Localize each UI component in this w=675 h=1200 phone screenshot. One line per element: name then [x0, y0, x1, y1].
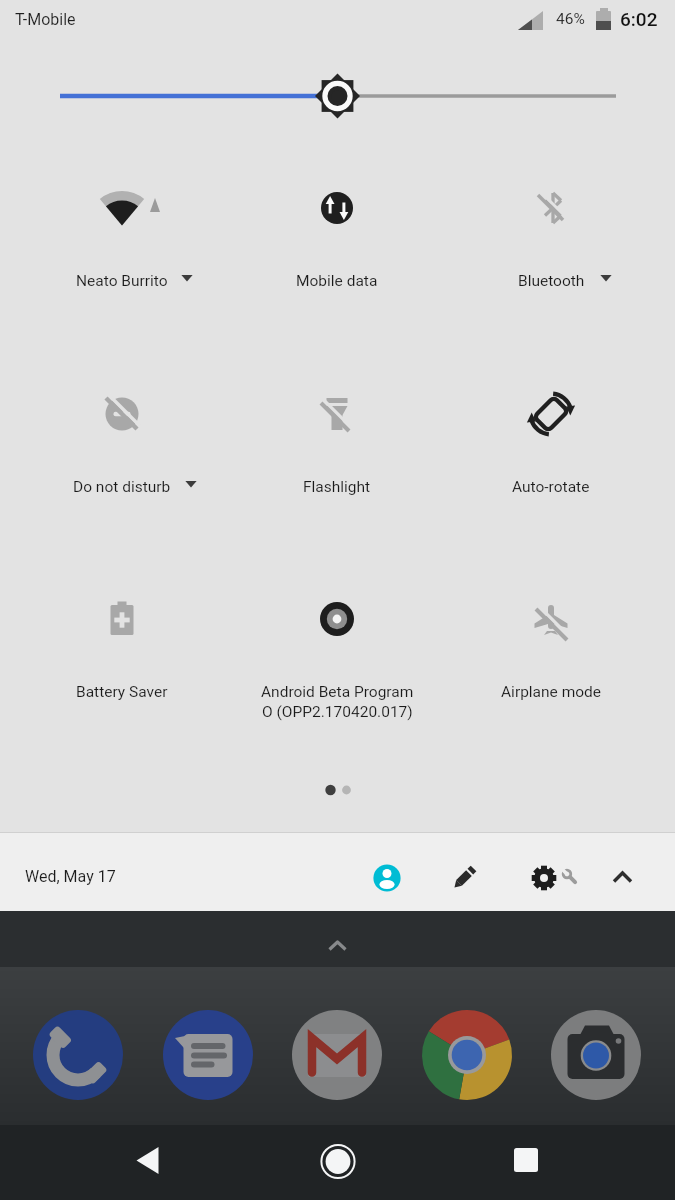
staticText: Flashlight [303, 478, 371, 496]
button[interactable]: Flashlight [230, 369, 444, 511]
staticText: Battery Saver [76, 683, 168, 701]
staticText: T-Mobile [15, 10, 76, 29]
button[interactable] [0, 72, 675, 120]
button[interactable]: Auto-rotate [444, 369, 658, 511]
button[interactable]: Airplane mode [444, 574, 658, 716]
button[interactable] [422, 1010, 512, 1100]
button[interactable] [33, 1010, 123, 1100]
staticText: Auto-rotate [512, 478, 590, 496]
button[interactable] [163, 1010, 253, 1100]
button[interactable] [365, 855, 409, 899]
button[interactable] [600, 855, 645, 899]
button[interactable]: Neato Burrito [15, 163, 229, 305]
staticText: 6:02 [620, 8, 658, 30]
staticText: Android Beta Program [261, 683, 414, 701]
button[interactable] [522, 855, 584, 899]
button[interactable] [310, 925, 365, 965]
button[interactable] [296, 1125, 380, 1198]
staticText: O (OPP2.170420.017) [262, 703, 413, 721]
staticText: Bluetooth [518, 272, 585, 290]
staticText: Wed, May 17 [25, 867, 116, 886]
staticText: Mobile data [296, 272, 378, 290]
button[interactable] [442, 855, 486, 899]
button[interactable]: Battery Saver [15, 574, 229, 716]
button[interactable]: Mobile data [230, 163, 444, 305]
staticText: Airplane mode [501, 683, 602, 701]
button[interactable] [484, 1125, 568, 1198]
staticText: Do not disturb [73, 478, 171, 496]
button[interactable] [292, 1010, 382, 1100]
button[interactable]: Android Beta Program [230, 574, 444, 739]
button[interactable]: Bluetooth [444, 163, 658, 305]
button[interactable] [106, 1125, 190, 1198]
staticText: 46% [556, 10, 585, 28]
staticText: Neato Burrito [76, 272, 168, 290]
button[interactable] [551, 1010, 641, 1100]
button[interactable]: Do not disturb [15, 369, 229, 511]
